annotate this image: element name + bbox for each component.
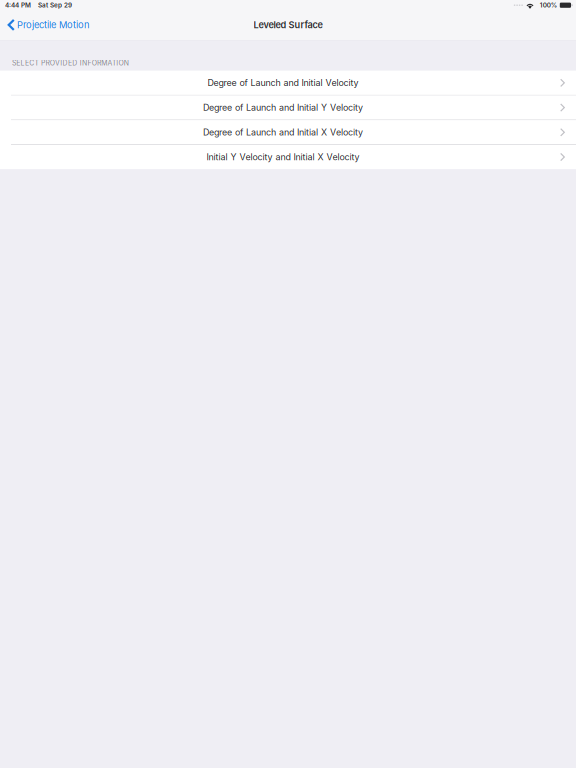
staticText: Leveled Surface [253, 19, 322, 30]
staticText: 100% [540, 1, 557, 9]
staticText: Degree of Launch and Initial X Velocity [203, 127, 363, 138]
button[interactable]: Degree of Launch and Initial X Velocity [0, 120, 576, 144]
staticText: Degree of Launch and Initial Y Velocity [203, 102, 363, 113]
staticText: Projectile Motion [17, 19, 90, 31]
staticText: Sat Sep 29 [38, 1, 72, 9]
button[interactable]: Degree of Launch and Initial Velocity [0, 71, 576, 95]
button[interactable]: Projectile Motion [0, 10, 96, 39]
button[interactable]: Degree of Launch and Initial Y Velocity [0, 95, 576, 120]
staticText: Degree of Launch and Initial Velocity [207, 77, 358, 88]
staticText: SELECT PROVIDED INFORMATION [12, 59, 129, 67]
staticText: 4:44 PM [5, 1, 31, 9]
staticText: Initial Y Velocity and Initial X Velocit… [206, 152, 359, 162]
button[interactable]: Initial Y Velocity and Initial X Velocit… [0, 145, 576, 169]
